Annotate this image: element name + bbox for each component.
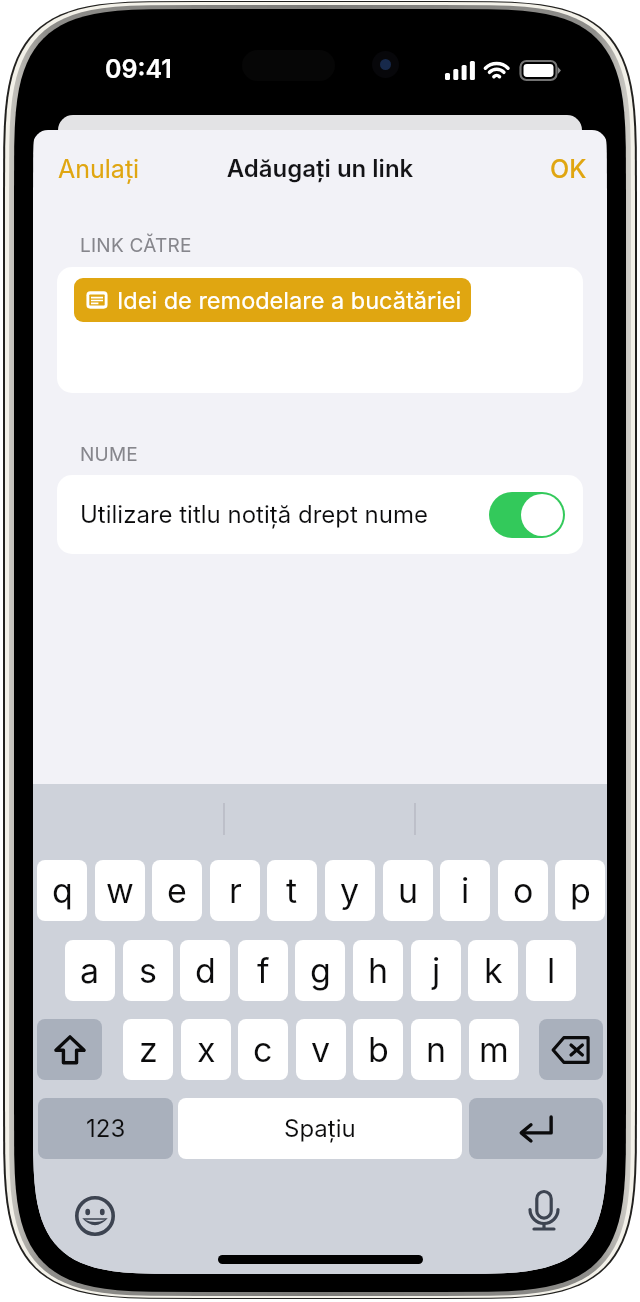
button[interactable]: c [238, 1019, 288, 1080]
staticText: g [310, 950, 331, 991]
button[interactable]: q [37, 860, 87, 921]
button[interactable]: a [65, 940, 115, 1001]
button[interactable]: l [526, 940, 576, 1001]
button[interactable]: d [180, 940, 230, 1001]
staticText: v [311, 1029, 331, 1070]
button[interactable]: 123 [38, 1098, 173, 1159]
button[interactable]: j [411, 940, 461, 1001]
button[interactable]: p [555, 860, 605, 921]
button[interactable]: z [123, 1019, 173, 1080]
button[interactable]: u [383, 860, 433, 921]
button[interactable]: t [267, 860, 317, 921]
staticText: e [167, 870, 187, 911]
button[interactable]: Shift [37, 1019, 102, 1080]
button[interactable]: Utilizare titlu notiță drept nume [57, 475, 583, 554]
button[interactable]: Use note title as name [489, 492, 565, 538]
staticText: q [52, 870, 73, 911]
staticText: y [340, 870, 360, 911]
staticText: u [398, 870, 419, 911]
button[interactable]: OK [537, 148, 600, 190]
button[interactable]: x [181, 1019, 231, 1080]
button[interactable]: n [411, 1019, 461, 1080]
staticText: Spațiu [284, 1114, 356, 1143]
staticText: p [570, 870, 591, 911]
staticText: 09:41 [105, 54, 172, 84]
staticText: t [286, 870, 298, 911]
button[interactable]: Spațiu [178, 1098, 462, 1159]
staticText: r [229, 870, 242, 911]
staticText: b [368, 1029, 389, 1070]
staticText: k [484, 950, 503, 991]
button[interactable]: k [468, 940, 518, 1001]
button[interactable]: Emoji keyboard [71, 1192, 119, 1240]
staticText: d [195, 950, 216, 991]
staticText: h [368, 950, 389, 991]
staticText: f [257, 950, 270, 991]
button[interactable]: y [325, 860, 375, 921]
staticText: o [513, 870, 534, 911]
button[interactable]: g [295, 940, 345, 1001]
button[interactable]: v [296, 1019, 346, 1080]
button[interactable]: h [353, 940, 403, 1001]
button[interactable]: e [152, 860, 202, 921]
button[interactable]: Anulați [45, 148, 153, 190]
staticText: a [80, 950, 100, 991]
staticText: i [461, 870, 470, 911]
button[interactable]: Idei de remodelare a bucătăriei [57, 267, 583, 393]
staticText: c [253, 1029, 273, 1070]
staticText: j [432, 950, 441, 991]
staticText: n [426, 1029, 447, 1070]
staticText: x [197, 1029, 216, 1070]
button[interactable]: Return [469, 1098, 603, 1159]
staticText: NUME [80, 443, 139, 466]
button[interactable]: f [238, 940, 288, 1001]
button[interactable]: Idei de remodelare a bucătăriei [74, 278, 471, 322]
button[interactable]: Dictation [525, 1190, 563, 1238]
button[interactable]: b [353, 1019, 403, 1080]
staticText: OK [550, 154, 587, 184]
staticText: w [106, 870, 134, 911]
staticText: s [139, 950, 157, 991]
staticText: 123 [86, 1114, 126, 1143]
staticText: l [547, 950, 556, 991]
staticText: Idei de remodelare a bucătăriei [117, 286, 462, 314]
button[interactable]: m [469, 1019, 519, 1080]
staticText: Adăugați un link [33, 154, 607, 183]
button[interactable]: o [498, 860, 548, 921]
staticText: LINK CĂTRE [80, 234, 192, 257]
button[interactable]: w [95, 860, 145, 921]
staticText: m [479, 1029, 509, 1070]
button[interactable]: i [440, 860, 490, 921]
button[interactable]: s [123, 940, 173, 1001]
button[interactable]: Backspace [539, 1019, 603, 1080]
staticText: Anulați [58, 154, 140, 184]
staticText: Utilizare titlu notiță drept nume [80, 500, 428, 529]
staticText: z [139, 1029, 158, 1070]
button[interactable]: r [210, 860, 260, 921]
